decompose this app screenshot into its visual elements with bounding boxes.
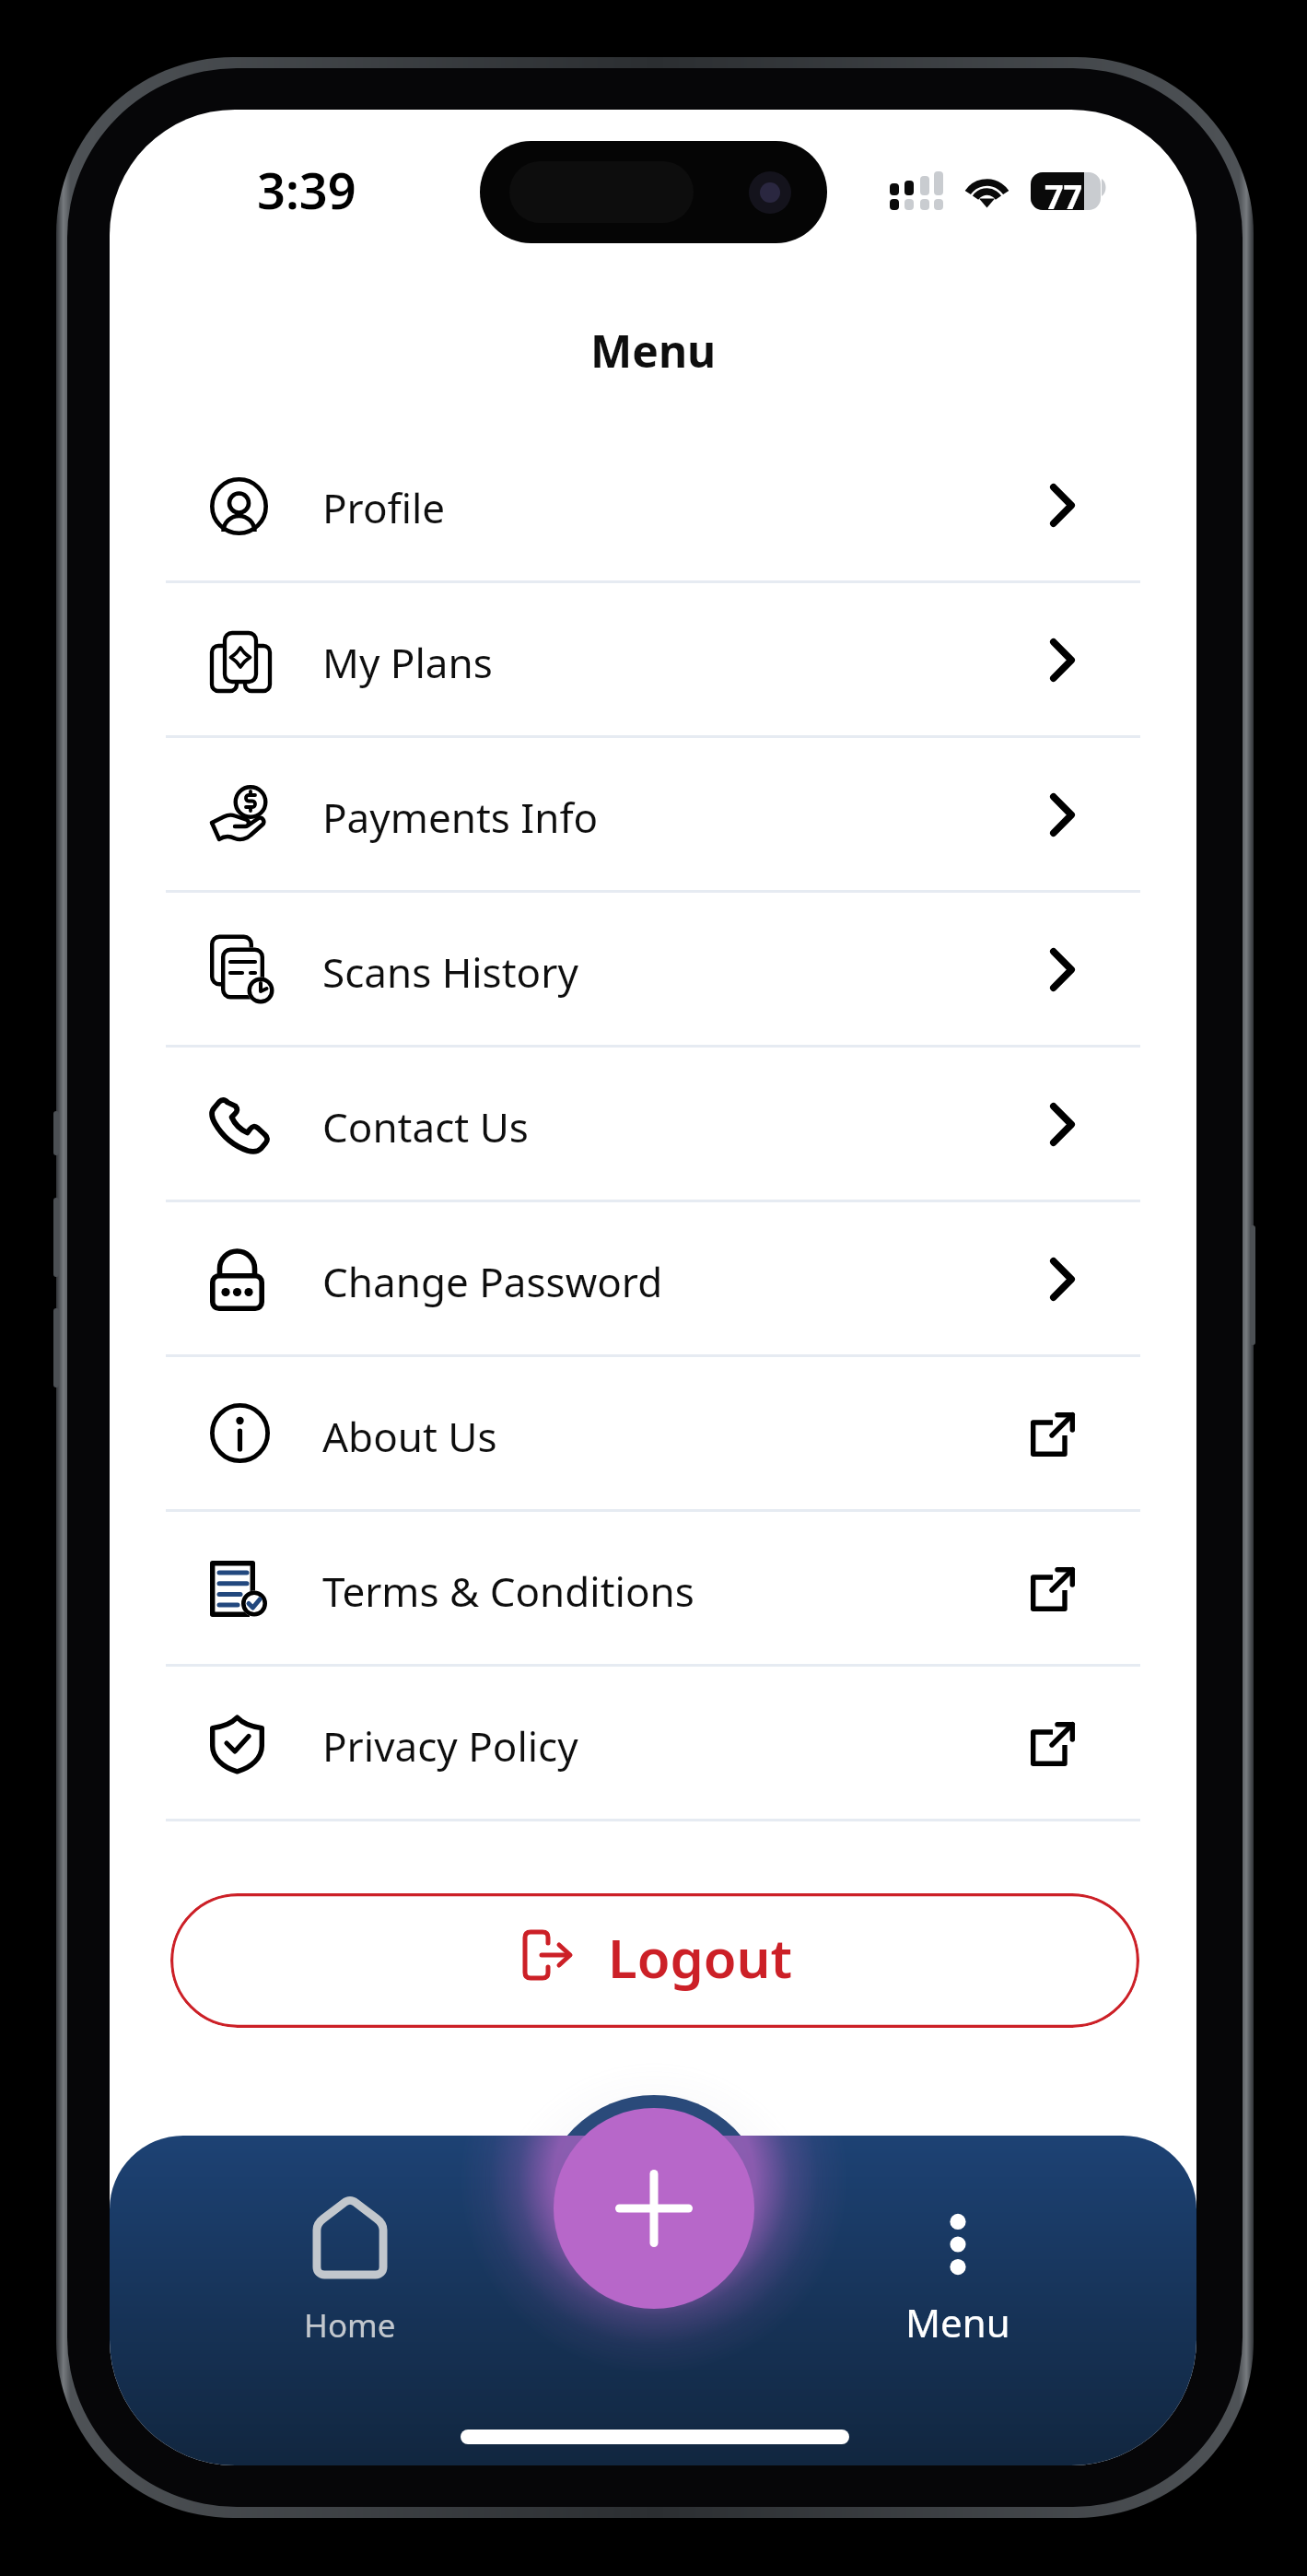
button[interactable]: My Plans <box>110 583 1196 735</box>
button[interactable]: Change Password <box>110 1202 1196 1354</box>
staticText: Contact Us <box>322 1099 529 1154</box>
staticText: My Plans <box>322 635 493 690</box>
staticText: 3:39 <box>257 156 356 224</box>
staticText: Change Password <box>322 1254 663 1309</box>
button[interactable]: Profile <box>110 428 1196 580</box>
staticText: Home <box>304 2303 396 2348</box>
staticText: About Us <box>322 1409 497 1464</box>
staticText: Logout <box>608 1921 793 1994</box>
button[interactable]: Privacy Policy <box>110 1667 1196 1819</box>
button[interactable]: About Us <box>110 1357 1196 1509</box>
button[interactable]: Logout <box>170 1893 1139 2028</box>
button[interactable]: Scans History <box>110 893 1196 1045</box>
staticText: Menu <box>905 2296 1010 2348</box>
staticText: Menu <box>590 321 717 381</box>
staticText: Profile <box>322 480 446 535</box>
staticText: Scans History <box>322 944 578 1000</box>
button[interactable]: Payments Info <box>110 738 1196 890</box>
button[interactable]: Menu <box>774 2149 1142 2380</box>
staticText: Privacy Policy <box>322 1718 578 1774</box>
button[interactable]: Add <box>554 2108 754 2309</box>
staticText: Payments Info <box>322 790 599 845</box>
button[interactable]: Contact Us <box>110 1048 1196 1200</box>
staticText: 77 <box>1044 174 1083 219</box>
button[interactable]: Terms & Conditions <box>110 1512 1196 1664</box>
staticText: Terms & Conditions <box>322 1563 694 1619</box>
button[interactable]: Home <box>166 2149 534 2380</box>
